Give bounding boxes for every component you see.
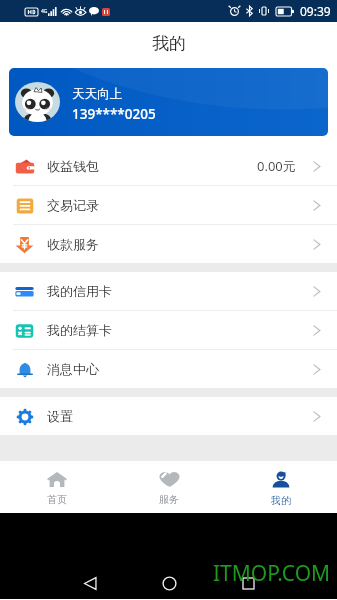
staticText: 设置 [47,408,73,424]
staticText: 我的信用卡 [47,283,112,299]
button[interactable]: 我的信用卡 [0,272,337,310]
button[interactable]: 收款服务 [0,225,337,263]
staticText: 消息中心 [47,361,99,377]
button[interactable]: 首页 [0,461,113,513]
staticText: 服务 [159,493,179,506]
staticText: ITMOP.COM [213,559,331,588]
staticText: 交易记录 [47,197,99,213]
staticText: 139****0205 [72,105,156,123]
button[interactable]: 服务 [113,461,225,513]
staticText: 收益钱包 [47,158,99,174]
other: Recents [243,578,254,589]
staticText: 09:39 [300,3,331,19]
staticText: 0.00元 [257,157,296,175]
staticText: 收款服务 [47,236,99,252]
button[interactable]: 我的 [225,461,337,513]
staticText: 首页 [47,493,67,506]
other: Home [162,576,177,591]
button[interactable]: 收益钱包 [0,147,337,185]
button[interactable]: 天天向上 [9,68,328,136]
button[interactable]: 我的结算卡 [0,311,337,349]
button[interactable]: 消息中心 [0,350,337,388]
staticText: 我的 [152,33,186,54]
staticText: 4G [41,8,48,15]
other: Back [84,577,97,590]
button[interactable]: 交易记录 [0,186,337,224]
staticText: 我的结算卡 [47,322,112,338]
staticText: 天天向上 [72,86,122,102]
button[interactable]: 设置 [0,397,337,435]
staticText: 我的 [271,494,291,507]
